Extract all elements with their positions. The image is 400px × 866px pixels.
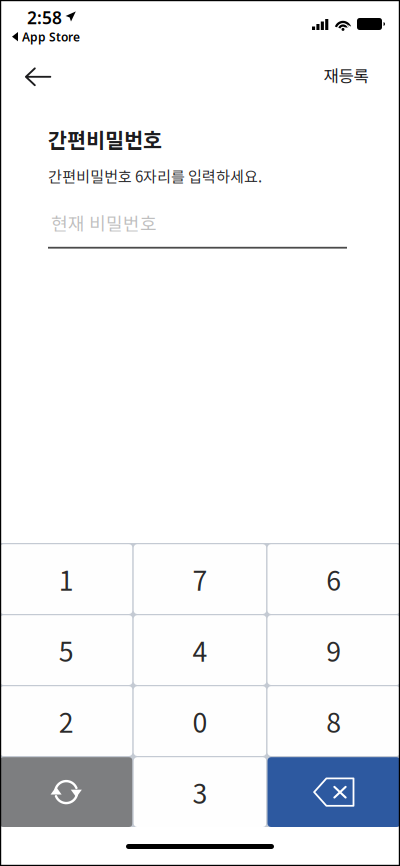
staticText: 4 [192,631,207,669]
button[interactable]: Back [12,54,64,100]
staticText: App Store [22,29,80,45]
button[interactable]: 5 [0,615,132,685]
button[interactable]: 2 [0,686,132,756]
staticText: 7 [192,560,207,598]
button[interactable]: 1 [0,544,132,614]
button[interactable]: 0 [134,686,266,756]
staticText: 9 [326,631,341,669]
staticText: 현재 비밀번호 [51,210,157,236]
staticText: 간편비밀번호 [48,124,162,154]
staticText: 간편비밀번호 6자리를 입력하세요. [48,165,262,187]
staticText: 2:58 [27,6,62,29]
staticText: 3 [192,773,207,811]
staticText: 5 [59,631,74,669]
button[interactable]: 3 [134,757,266,827]
button[interactable]: 6 [267,544,400,614]
staticText: 1 [59,560,74,598]
button[interactable]: 재등록 [312,52,380,98]
staticText: 0 [192,702,207,740]
button[interactable]: 7 [134,544,266,614]
button[interactable]: Delete [267,757,400,827]
staticText: 6 [326,560,341,598]
button[interactable]: 9 [267,615,400,685]
staticText: 8 [326,702,341,740]
staticText: 재등록 [323,63,368,87]
button[interactable]: 4 [134,615,266,685]
button[interactable]: Shuffle keypad [0,757,132,827]
button[interactable]: 8 [267,686,400,756]
staticText: 2 [59,702,74,740]
